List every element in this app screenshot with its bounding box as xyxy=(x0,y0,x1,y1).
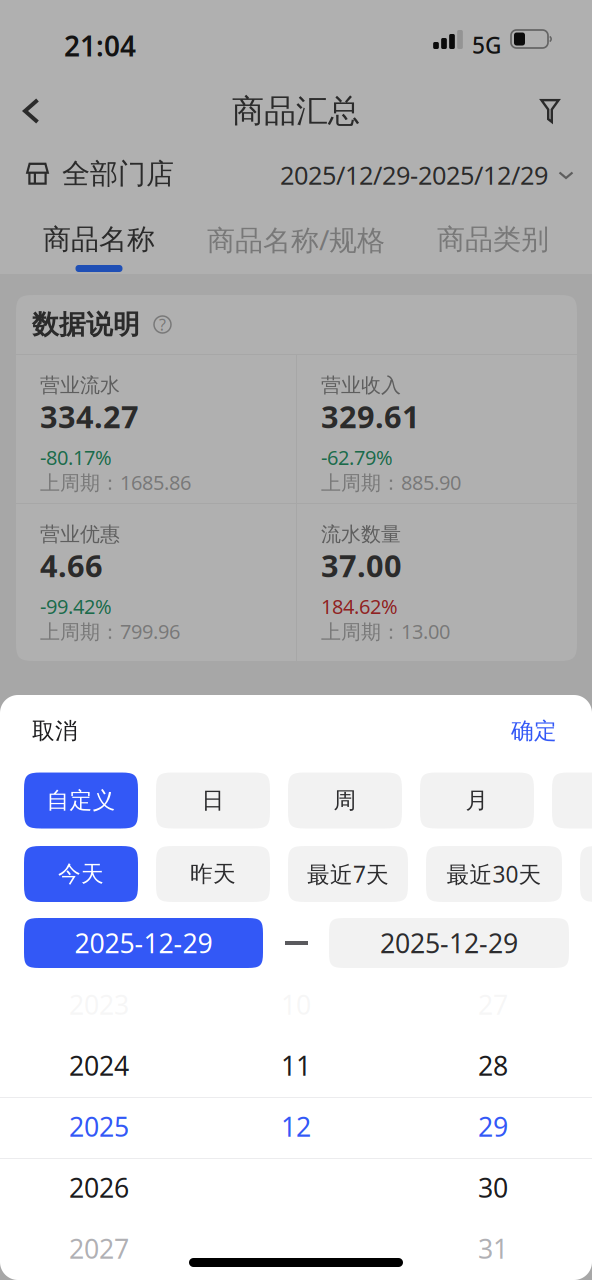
staticText: 2023 xyxy=(69,987,129,1022)
staticText: 今天 xyxy=(58,860,104,888)
staticText: 上周期：799.96 xyxy=(40,618,180,645)
staticText: 28 xyxy=(478,1048,508,1083)
button[interactable]: 最近7天 xyxy=(288,846,408,902)
staticText: 取消 xyxy=(32,717,78,745)
staticText: 2025/12/29-2025/12/29 xyxy=(280,158,548,192)
staticText: 2025-12-29 xyxy=(74,925,212,961)
staticText: 营业流水 xyxy=(40,373,120,398)
button[interactable]: 本月 xyxy=(580,846,592,902)
staticText: 月 xyxy=(465,787,488,814)
staticText: 商品名称/规格 xyxy=(207,221,385,258)
staticText: 周 xyxy=(333,787,356,814)
button[interactable]: 周 xyxy=(288,772,402,828)
staticText: -62.79% xyxy=(321,444,393,471)
staticText: 12 xyxy=(281,1109,311,1144)
button[interactable]: 日 xyxy=(156,772,270,828)
button[interactable]: Filter xyxy=(526,87,574,135)
staticText: 334.27 xyxy=(40,396,139,437)
button[interactable]: 商品类别 xyxy=(394,214,591,274)
staticText: 数据说明 xyxy=(32,308,140,341)
staticText: 流水数量 xyxy=(321,522,401,547)
staticText: 30 xyxy=(478,1170,508,1205)
staticText: -99.42% xyxy=(40,593,112,620)
staticText: 4.66 xyxy=(40,545,103,586)
button[interactable]: 2025/12/29-2025/12/29 xyxy=(280,161,574,189)
staticText: 2025-12-29 xyxy=(380,925,518,961)
staticText: 184.62% xyxy=(321,593,398,620)
staticText: 昨天 xyxy=(190,860,236,888)
staticText: 5G xyxy=(472,30,501,60)
staticText: 确定 xyxy=(511,717,557,745)
staticText: 最近7天 xyxy=(307,859,389,889)
staticText: 上周期：885.90 xyxy=(321,469,461,496)
staticText: 2024 xyxy=(69,1048,129,1083)
staticText: 上周期：13.00 xyxy=(321,618,450,645)
staticText: 上周期：1685.86 xyxy=(40,469,191,496)
button[interactable]: 取消 xyxy=(0,703,102,759)
button[interactable]: 确定 xyxy=(487,703,592,759)
staticText: 营业优惠 xyxy=(40,522,120,547)
button[interactable]: 商品名称/规格 xyxy=(197,214,394,274)
staticText: 2025 xyxy=(69,1109,129,1144)
staticText: 最近30天 xyxy=(446,859,541,889)
button[interactable]: 全部门店 xyxy=(26,160,174,188)
button[interactable]: 今天 xyxy=(24,846,138,902)
staticText: 自定义 xyxy=(46,787,115,814)
staticText: 11 xyxy=(281,1048,311,1083)
button[interactable]: 2025-12-29 xyxy=(329,918,569,968)
staticText: 31 xyxy=(478,1231,508,1266)
button[interactable]: 最近30天 xyxy=(426,846,562,902)
button[interactable]: 自定义 xyxy=(24,772,138,828)
staticText: 329.61 xyxy=(321,396,420,437)
staticText: 37.00 xyxy=(321,545,402,586)
staticText: 商品汇总 xyxy=(232,91,360,131)
button[interactable]: 2025-12-29 xyxy=(24,918,263,968)
staticText: 全部门店 xyxy=(62,157,174,191)
staticText: 29 xyxy=(478,1109,508,1144)
staticText: 商品类别 xyxy=(437,222,549,257)
button[interactable]: 商品名称 xyxy=(0,214,197,274)
button[interactable]: 月 xyxy=(420,772,534,828)
staticText: 2027 xyxy=(69,1231,129,1266)
staticText: ? xyxy=(159,314,166,335)
staticText: 21:04 xyxy=(64,27,136,64)
staticText: -80.17% xyxy=(40,444,112,471)
button[interactable]: Back xyxy=(8,87,54,135)
staticText: 2026 xyxy=(69,1170,129,1205)
staticText: 日 xyxy=(201,787,224,814)
button[interactable]: 昨天 xyxy=(156,846,270,902)
staticText: 商品名称 xyxy=(43,222,155,257)
staticText: 营业收入 xyxy=(321,373,401,398)
